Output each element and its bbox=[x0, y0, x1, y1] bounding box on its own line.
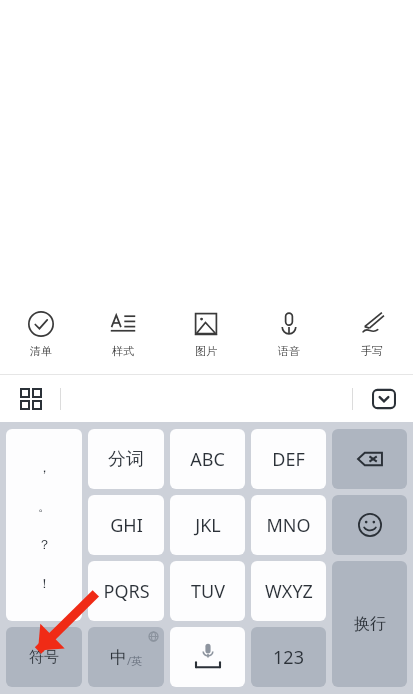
staticText: 手写 bbox=[361, 344, 383, 358]
staticText: ！ bbox=[38, 575, 51, 591]
staticText: /英 bbox=[127, 653, 143, 668]
button[interactable]: 符号 bbox=[6, 627, 82, 687]
staticText: 清单 bbox=[30, 344, 52, 358]
button[interactable]: 123 bbox=[251, 627, 326, 687]
button[interactable]: JKL bbox=[170, 495, 245, 555]
staticText: ？ bbox=[38, 536, 51, 552]
staticText: MNO bbox=[266, 513, 311, 538]
button[interactable]: WXYZ bbox=[251, 561, 326, 621]
staticText: ， bbox=[38, 459, 51, 475]
button[interactable]: GHI bbox=[88, 495, 164, 555]
button[interactable]: 清单 bbox=[0, 294, 82, 374]
staticText: TUV bbox=[191, 579, 225, 604]
button[interactable]: ABC bbox=[170, 429, 245, 489]
staticText: WXYZ bbox=[265, 579, 313, 604]
button[interactable]: MNO bbox=[251, 495, 326, 555]
button[interactable]: 图片 bbox=[164, 294, 247, 374]
button[interactable]: 分词 bbox=[88, 429, 164, 489]
button[interactable] bbox=[332, 495, 407, 555]
button[interactable]: 手写 bbox=[330, 294, 413, 374]
staticText: ABC bbox=[190, 447, 225, 472]
staticText: GHI bbox=[110, 513, 143, 538]
staticText: 。 bbox=[38, 498, 51, 514]
staticText: 换行 bbox=[354, 614, 386, 634]
button[interactable]: ， bbox=[6, 429, 82, 621]
staticText: 分词 bbox=[108, 448, 144, 471]
staticText: 中 bbox=[110, 647, 127, 668]
button[interactable]: Hide keyboard bbox=[363, 378, 405, 420]
staticText: 符号 bbox=[29, 648, 59, 667]
button[interactable]: TUV bbox=[170, 561, 245, 621]
button[interactable]: 换行 bbox=[332, 561, 407, 687]
button[interactable]: 样式 bbox=[82, 294, 164, 374]
staticText: DEF bbox=[272, 447, 305, 472]
staticText: 样式 bbox=[112, 344, 134, 358]
staticText: 语音 bbox=[278, 344, 300, 358]
button[interactable] bbox=[332, 429, 407, 489]
button[interactable]: 语音 bbox=[247, 294, 330, 374]
staticText: 123 bbox=[273, 645, 304, 670]
button[interactable] bbox=[170, 627, 245, 687]
staticText: PQRS bbox=[103, 579, 150, 604]
button[interactable]: PQRS bbox=[88, 561, 164, 621]
button[interactable]: Keyboard panel bbox=[10, 378, 52, 420]
staticText: 图片 bbox=[195, 344, 217, 358]
staticText: JKL bbox=[195, 513, 221, 538]
button[interactable]: 中 bbox=[88, 627, 164, 687]
button[interactable]: DEF bbox=[251, 429, 326, 489]
